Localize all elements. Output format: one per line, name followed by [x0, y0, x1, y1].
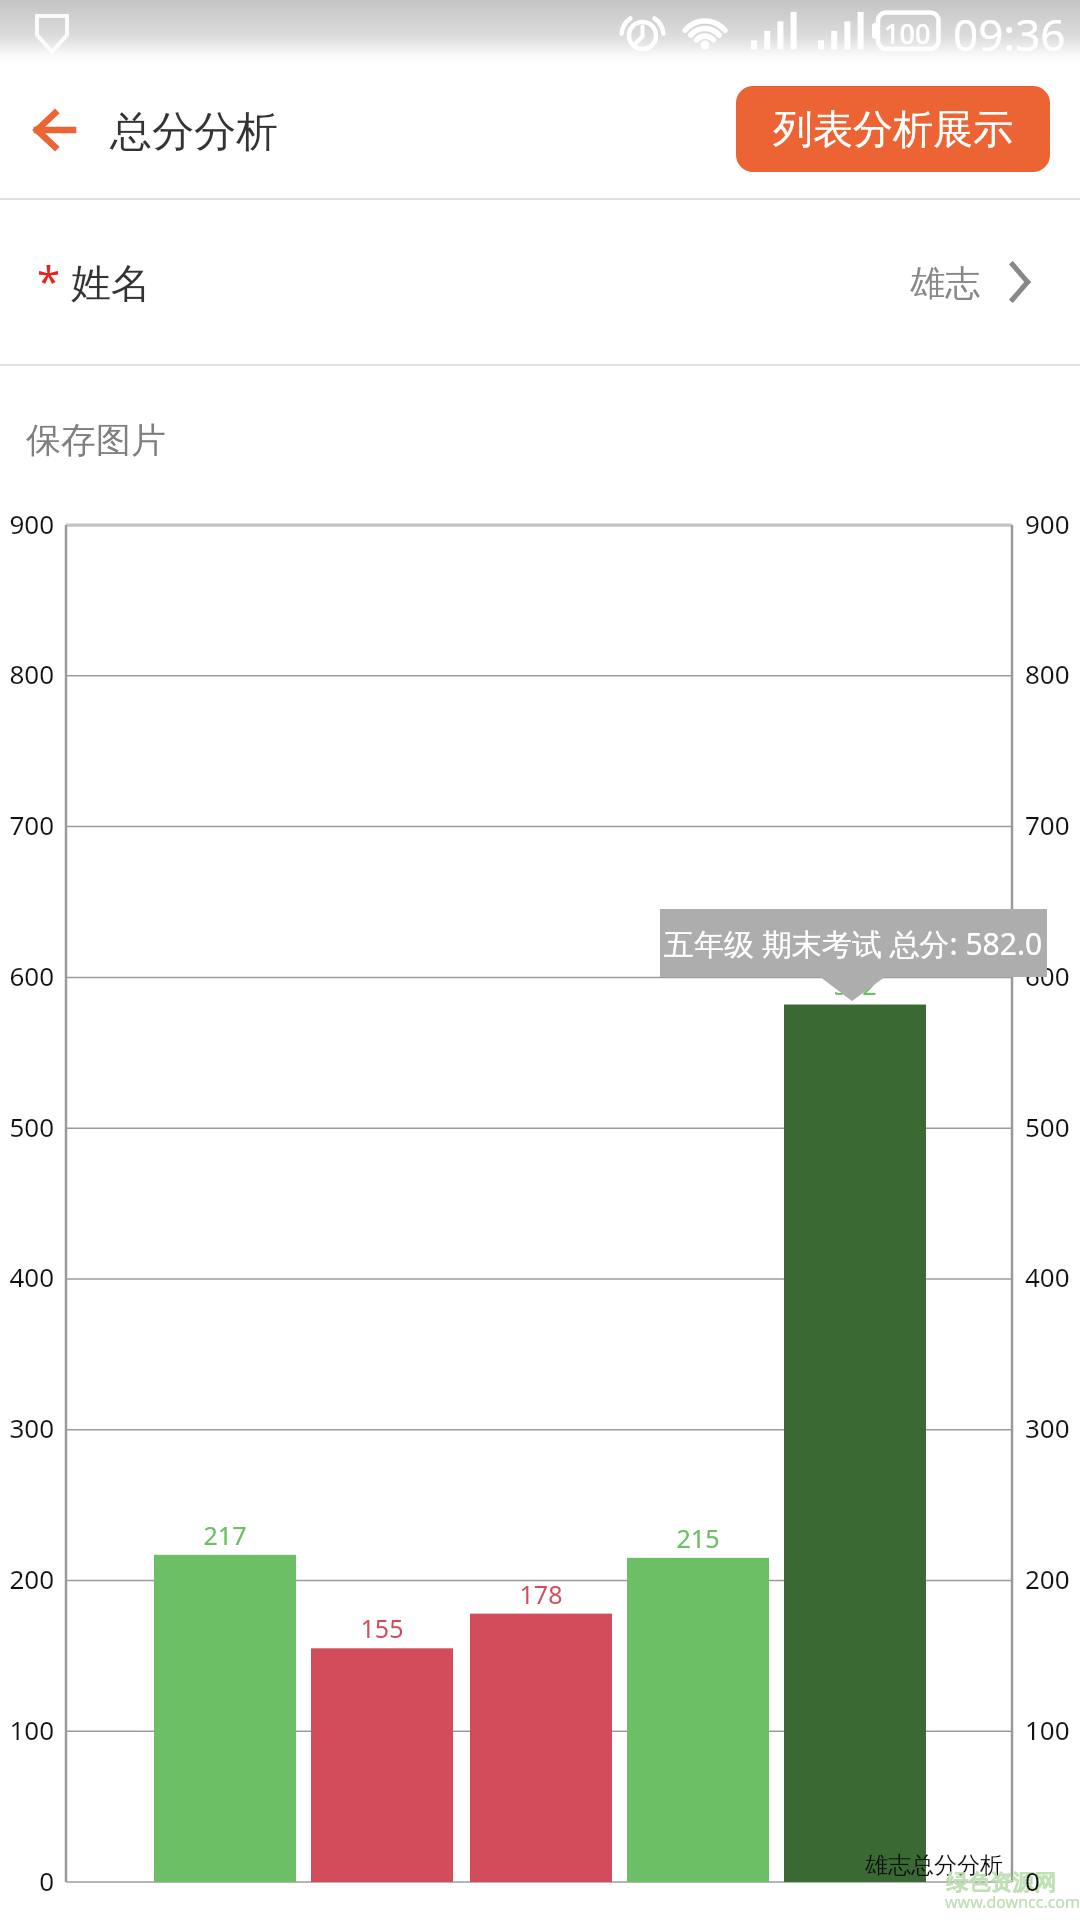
- staticText: 500: [0, 1109, 54, 1144]
- staticText: 列表分析展示: [773, 104, 1013, 154]
- staticText: 900: [0, 506, 54, 541]
- staticText: 09:36: [953, 4, 1066, 64]
- staticText: 400: [0, 1259, 54, 1294]
- staticText: 400: [1025, 1259, 1070, 1294]
- staticText: 500: [1025, 1109, 1070, 1144]
- staticText: 保存图片: [26, 418, 166, 462]
- staticText: 582: [784, 968, 926, 1002]
- staticText: 700: [0, 807, 54, 842]
- staticText: 215: [627, 1521, 769, 1555]
- button[interactable]: Back: [0, 64, 110, 196]
- staticText: 600: [1025, 958, 1070, 993]
- staticText: 800: [0, 656, 54, 691]
- staticText: 155: [311, 1611, 453, 1645]
- staticText: 100: [884, 15, 931, 52]
- staticText: 800: [1025, 656, 1070, 691]
- staticText: 200: [1025, 1561, 1070, 1596]
- staticText: *: [37, 252, 61, 309]
- staticText: 雄志: [910, 261, 980, 305]
- staticText: 总分分析: [110, 106, 278, 159]
- staticText: 五年级 期末考试 总分: 582.0: [664, 923, 1043, 964]
- staticText: 600: [0, 958, 54, 993]
- staticText: 700: [1025, 807, 1070, 842]
- staticText: 0: [0, 1863, 54, 1898]
- staticText: 217: [154, 1518, 296, 1552]
- staticText: 300: [0, 1410, 54, 1445]
- staticText: 200: [0, 1561, 54, 1596]
- staticText: 0: [1025, 1863, 1040, 1898]
- staticText: 姓名: [71, 258, 151, 308]
- staticText: 100: [1025, 1712, 1070, 1747]
- staticText: 300: [1025, 1410, 1070, 1445]
- staticText: 绿色资源网: [946, 1869, 1056, 1897]
- staticText: 雄志总分分析: [865, 1851, 1003, 1880]
- staticText: 100: [0, 1712, 54, 1747]
- button[interactable]: *: [0, 200, 1080, 364]
- button[interactable]: 列表分析展示: [736, 86, 1050, 172]
- staticText: 900: [1025, 506, 1070, 541]
- staticText: 178: [470, 1577, 612, 1611]
- staticText: www.downcc.com: [945, 1891, 1080, 1913]
